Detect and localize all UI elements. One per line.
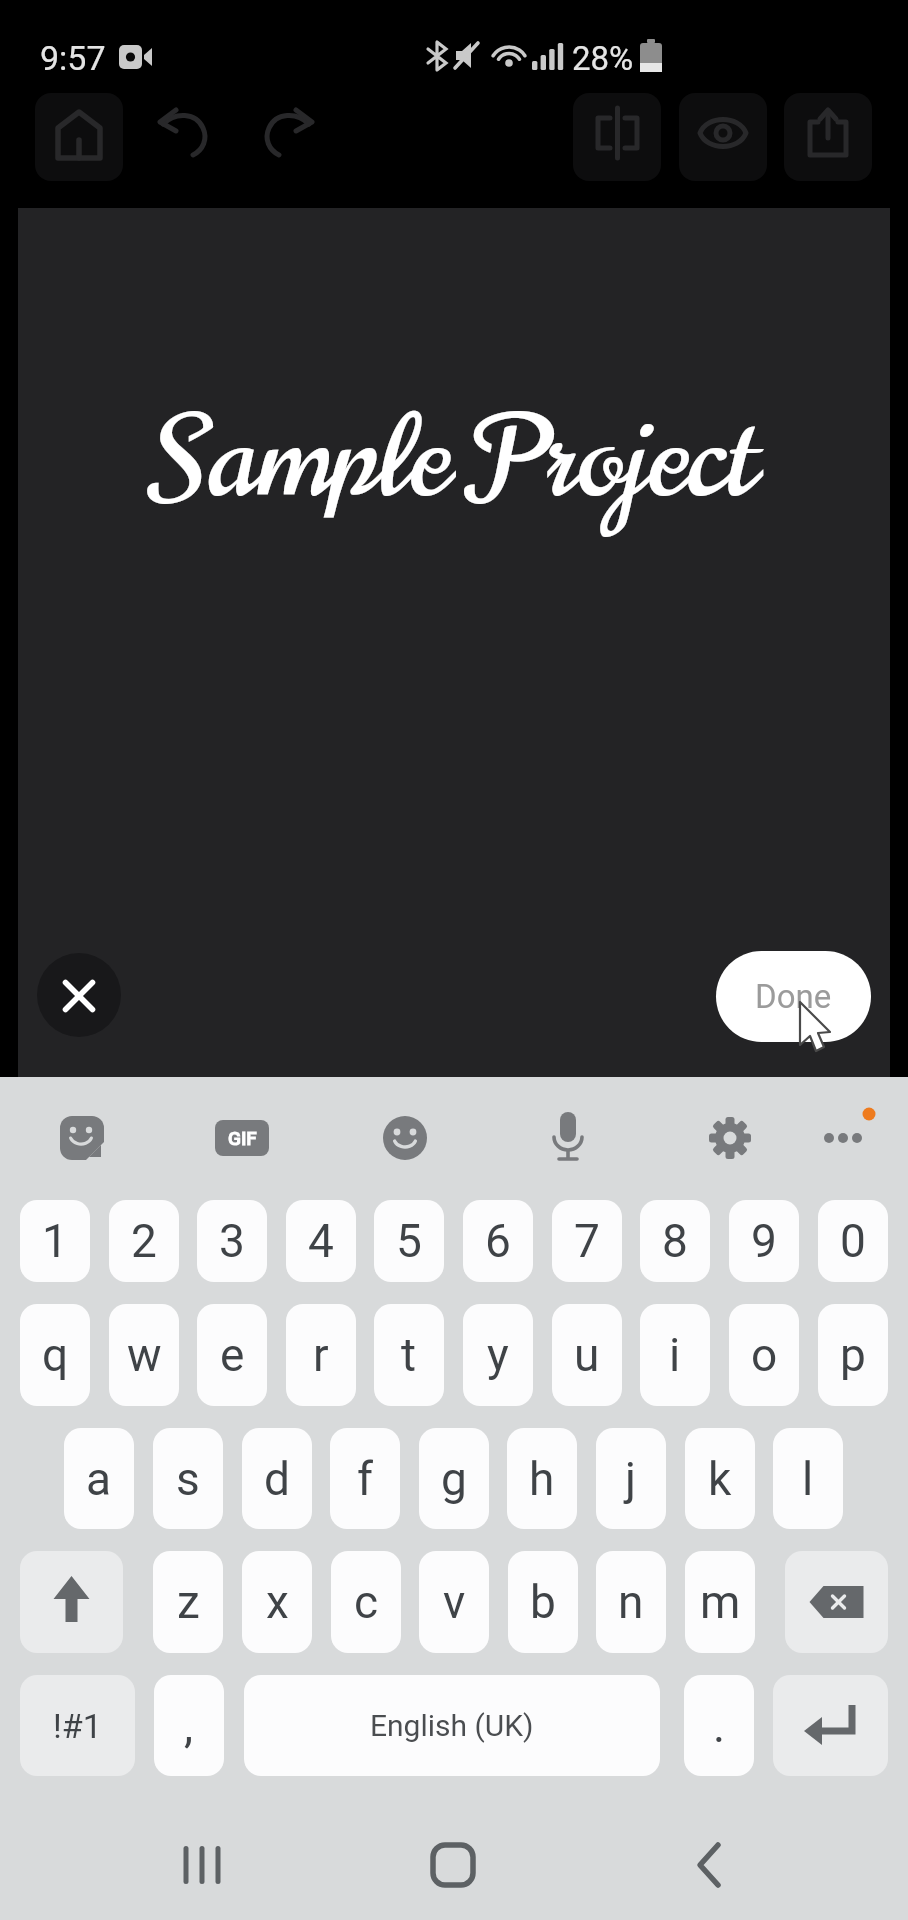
staticText: 6 (485, 1214, 511, 1268)
button[interactable]: o (729, 1304, 799, 1406)
staticText: . (713, 1699, 726, 1753)
staticText: a (86, 1452, 112, 1506)
button[interactable]: 7 (552, 1200, 622, 1282)
button[interactable]: !#1 (20, 1675, 135, 1776)
button[interactable]: c (331, 1551, 401, 1653)
staticText: u (574, 1328, 600, 1382)
staticText: e (220, 1328, 245, 1382)
staticText: 9:57 (40, 38, 106, 78)
button[interactable] (52, 1108, 112, 1168)
button[interactable]: d (242, 1428, 312, 1529)
staticText: l (802, 1452, 814, 1506)
button[interactable] (246, 93, 336, 181)
button[interactable]: z (153, 1551, 223, 1653)
staticText: c (354, 1575, 379, 1629)
button[interactable] (813, 1108, 873, 1168)
button[interactable]: k (685, 1428, 755, 1529)
button[interactable]: e (197, 1304, 267, 1406)
button[interactable] (402, 1815, 507, 1915)
button[interactable]: l (773, 1428, 843, 1529)
button[interactable]: q (20, 1304, 90, 1406)
button[interactable]: b (508, 1551, 578, 1653)
staticText: Sample Project (151, 380, 757, 536)
button[interactable] (658, 1815, 763, 1915)
staticText: GIF (228, 1127, 257, 1149)
staticText: 4 (308, 1214, 334, 1268)
button[interactable] (679, 93, 769, 181)
staticText: b (530, 1575, 556, 1629)
button[interactable] (37, 953, 121, 1037)
staticText: i (669, 1328, 681, 1382)
staticText: g (441, 1452, 467, 1506)
staticText: o (751, 1328, 778, 1382)
staticText: 5 (396, 1214, 422, 1268)
staticText: , (184, 1699, 194, 1753)
staticText: y (487, 1328, 509, 1382)
button[interactable]: s (153, 1428, 223, 1529)
button[interactable] (773, 1675, 888, 1776)
button[interactable]: 6 (463, 1200, 533, 1282)
staticText: English (UK) (370, 1708, 534, 1743)
button[interactable]: a (64, 1428, 134, 1529)
staticText: !#1 (53, 1706, 102, 1746)
staticText: 2 (131, 1214, 157, 1268)
button[interactable]: g (419, 1428, 489, 1529)
button[interactable]: j (596, 1428, 666, 1529)
button[interactable]: w (109, 1304, 179, 1406)
staticText: 28% (572, 39, 634, 78)
staticText: x (266, 1575, 289, 1629)
button[interactable] (785, 1551, 888, 1653)
button[interactable]: GIF (215, 1120, 269, 1156)
staticText: h (529, 1452, 555, 1506)
button[interactable]: h (507, 1428, 577, 1529)
button[interactable]: y (463, 1304, 533, 1406)
button[interactable]: p (818, 1304, 888, 1406)
button[interactable] (138, 93, 228, 181)
staticText: f (357, 1452, 373, 1506)
staticText: w (127, 1328, 162, 1382)
button[interactable]: English (UK) (244, 1675, 660, 1776)
button[interactable]: n (596, 1551, 666, 1653)
button[interactable]: m (685, 1551, 755, 1653)
staticText: 3 (219, 1214, 245, 1268)
button[interactable]: t (374, 1304, 444, 1406)
staticText: m (700, 1575, 741, 1629)
button[interactable] (784, 93, 874, 181)
staticText: k (708, 1452, 732, 1506)
button[interactable]: 9 (729, 1200, 799, 1282)
button[interactable]: 8 (640, 1200, 710, 1282)
staticText: t (401, 1328, 417, 1382)
staticText: p (840, 1328, 866, 1382)
button[interactable] (34, 93, 124, 181)
button[interactable]: f (330, 1428, 400, 1529)
button[interactable] (573, 93, 663, 181)
staticText: z (177, 1575, 200, 1629)
button[interactable]: . (684, 1675, 754, 1776)
staticText: n (618, 1575, 644, 1629)
button[interactable]: v (419, 1551, 489, 1653)
staticText: 0 (840, 1214, 866, 1268)
staticText: j (625, 1452, 637, 1506)
button[interactable] (375, 1108, 435, 1168)
button[interactable]: 5 (374, 1200, 444, 1282)
button[interactable]: 4 (286, 1200, 356, 1282)
button[interactable] (150, 1815, 255, 1915)
button[interactable]: i (640, 1304, 710, 1406)
button[interactable] (538, 1108, 598, 1168)
button[interactable]: 3 (197, 1200, 267, 1282)
staticText: d (264, 1452, 290, 1506)
button[interactable]: x (242, 1551, 312, 1653)
button[interactable]: u (552, 1304, 622, 1406)
button[interactable]: 0 (818, 1200, 888, 1282)
staticText: v (443, 1575, 466, 1629)
button[interactable]: Done (716, 951, 871, 1042)
staticText: Done (755, 977, 832, 1016)
staticText: q (42, 1328, 69, 1382)
button[interactable]: 1 (20, 1200, 90, 1282)
staticText: s (176, 1452, 200, 1506)
button[interactable]: r (286, 1304, 356, 1406)
button[interactable]: , (154, 1675, 224, 1776)
button[interactable]: 2 (109, 1200, 179, 1282)
button[interactable] (700, 1108, 760, 1168)
button[interactable] (20, 1551, 123, 1653)
